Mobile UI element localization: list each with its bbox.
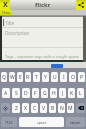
button[interactable]: space <box>19 117 64 127</box>
staticText: A <box>4 90 8 97</box>
button[interactable]: V <box>40 103 47 113</box>
button[interactable]: return <box>66 117 85 127</box>
button[interactable]: H <box>50 88 57 98</box>
button[interactable]: T <box>33 72 40 82</box>
button[interactable]: Photo <box>0 10 12 15</box>
button[interactable]: ?123 <box>1 117 17 127</box>
button[interactable]: X <box>22 103 29 113</box>
staticText: N <box>60 105 64 112</box>
staticText: U <box>53 74 57 81</box>
button[interactable]: Tags - separate tags with a single space <box>2 48 83 60</box>
button[interactable]: S <box>12 88 20 98</box>
staticText: Z <box>15 105 18 112</box>
staticText: L <box>79 90 82 97</box>
button[interactable]: Close <box>0 0 10 10</box>
button[interactable]: L <box>77 88 84 98</box>
staticText: T <box>35 74 38 81</box>
button[interactable]: Title <box>2 17 83 27</box>
staticText: O <box>71 74 75 81</box>
staticText: F <box>34 90 37 97</box>
button[interactable]: Q <box>1 72 7 82</box>
staticText: S <box>15 90 18 97</box>
button[interactable]: Backspace <box>76 103 85 113</box>
staticText: C <box>33 105 37 112</box>
button[interactable]: A <box>2 88 10 98</box>
staticText: M <box>68 105 73 112</box>
button[interactable]: W <box>9 72 15 82</box>
button[interactable]: O <box>69 72 76 82</box>
staticText: R <box>26 74 30 81</box>
staticText: B <box>51 105 55 112</box>
button[interactable]: C <box>31 103 38 113</box>
staticText: E <box>19 74 22 81</box>
button[interactable]: N <box>58 103 65 113</box>
button[interactable]: P <box>78 72 85 82</box>
button[interactable]: J <box>59 88 66 98</box>
staticText: P <box>80 74 84 81</box>
button[interactable]: M <box>67 103 74 113</box>
button[interactable]: I <box>60 72 67 82</box>
staticText: flickr <box>35 1 51 9</box>
staticText: V <box>42 105 46 112</box>
staticText: Tags - separate tags with a single space <box>5 54 79 59</box>
staticText: Title <box>5 20 14 26</box>
staticText: J <box>62 90 64 97</box>
button[interactable]: F <box>32 88 39 98</box>
staticText: space <box>37 120 47 125</box>
button[interactable] <box>51 64 63 68</box>
staticText: K <box>70 90 74 97</box>
staticText: X <box>3 0 8 10</box>
button[interactable]: Shift <box>1 103 10 113</box>
button[interactable]: D <box>22 88 30 98</box>
button[interactable]: K <box>68 88 75 98</box>
button[interactable]: G <box>41 88 48 98</box>
button[interactable]: Share <box>76 0 86 10</box>
button[interactable]: R <box>25 72 31 82</box>
staticText: W <box>10 74 15 81</box>
staticText: G <box>43 90 47 97</box>
staticText: return <box>70 120 81 125</box>
button[interactable]: B <box>49 103 56 113</box>
button[interactable]: Description <box>2 28 83 47</box>
staticText: Description <box>5 30 30 36</box>
staticText: X <box>24 105 27 112</box>
staticText: Photo <box>2 11 11 15</box>
button[interactable]: U <box>51 72 58 82</box>
button[interactable]: Y <box>42 72 49 82</box>
staticText: D <box>24 90 28 97</box>
button[interactable]: Z <box>12 103 20 113</box>
staticText: Y <box>44 74 47 81</box>
staticText: H <box>52 90 56 97</box>
button[interactable]: E <box>17 72 23 82</box>
staticText: ?123 <box>5 120 13 125</box>
staticText: Q <box>2 74 6 81</box>
staticText: I <box>63 74 65 81</box>
